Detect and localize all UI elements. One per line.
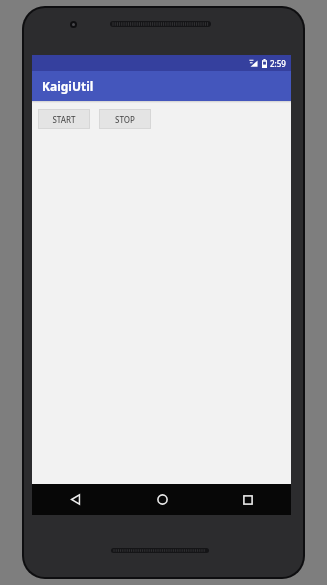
- button[interactable]: Home: [119, 484, 205, 515]
- button[interactable]: Back: [32, 484, 119, 515]
- staticText: START: [52, 114, 76, 125]
- staticText: 2:59: [270, 58, 286, 69]
- button[interactable]: Recent apps: [205, 484, 291, 515]
- button[interactable]: START: [38, 109, 90, 129]
- staticText: STOP: [115, 114, 135, 125]
- staticText: KaigiUtil: [42, 78, 94, 94]
- button[interactable]: STOP: [99, 109, 151, 129]
